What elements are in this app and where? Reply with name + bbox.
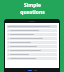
button[interactable]: [7, 25, 57, 28]
button[interactable]: [7, 57, 57, 60]
button[interactable]: [7, 29, 57, 32]
button[interactable]: [7, 53, 57, 56]
button[interactable]: [7, 45, 57, 48]
staticText: questions: [20, 9, 45, 16]
button[interactable]: Home: [28, 70, 32, 71]
button[interactable]: [7, 33, 57, 36]
staticText: Simple: [24, 2, 41, 9]
button[interactable]: [7, 49, 57, 52]
button[interactable]: [7, 41, 57, 44]
button[interactable]: [7, 37, 57, 40]
